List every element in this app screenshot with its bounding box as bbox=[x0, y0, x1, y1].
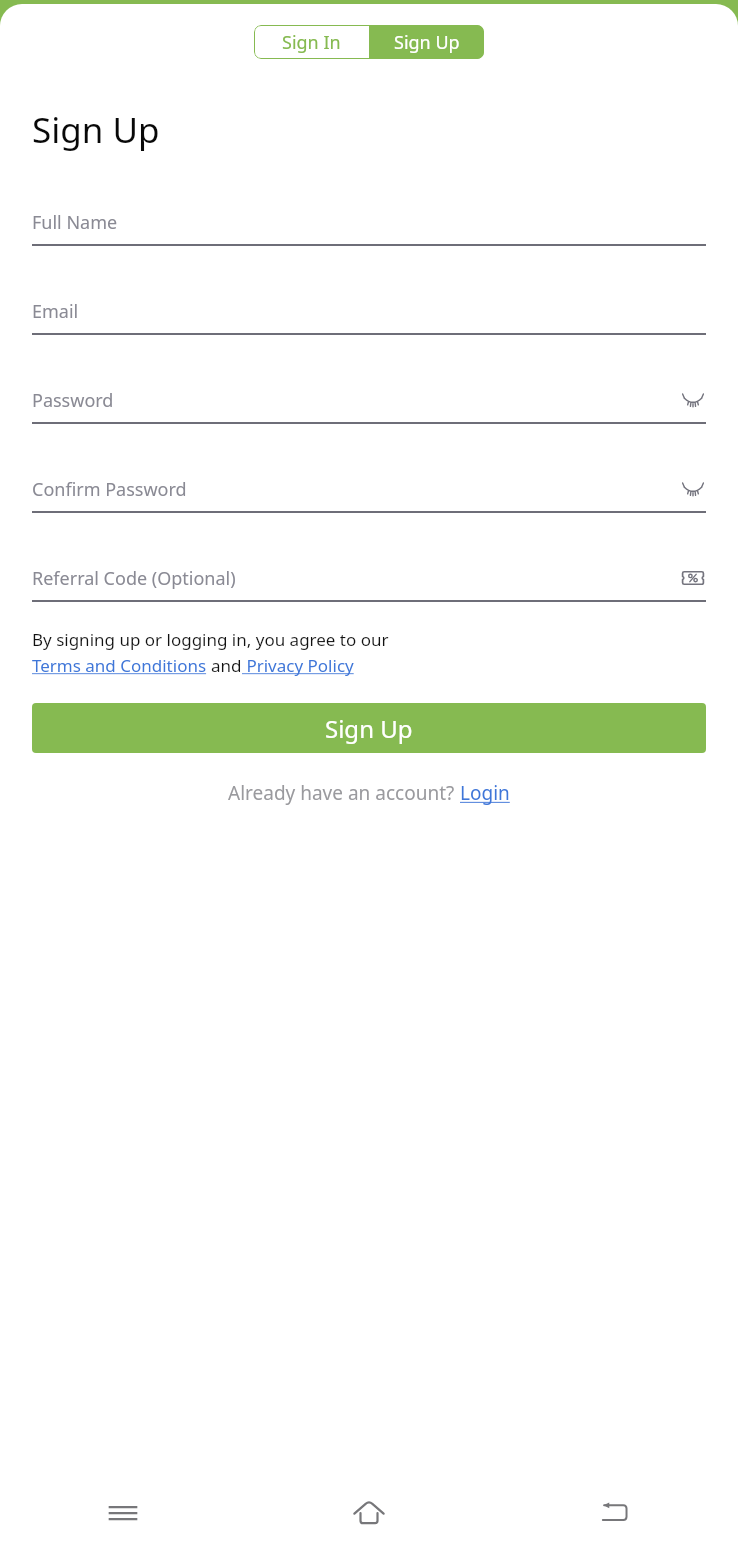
staticText: Sign Up bbox=[32, 106, 160, 154]
button[interactable]: Privacy Policy bbox=[242, 654, 354, 677]
button[interactable]: Email bbox=[32, 298, 706, 335]
staticText: Email bbox=[32, 299, 680, 324]
button[interactable]: Full Name bbox=[32, 209, 706, 246]
staticText: Sign Up bbox=[394, 30, 460, 55]
staticText: Confirm Password bbox=[32, 477, 680, 502]
button[interactable]: Show password bbox=[680, 476, 706, 502]
staticText: Already have an account? bbox=[228, 780, 460, 806]
button[interactable]: Sign Up bbox=[32, 703, 706, 753]
staticText: Password bbox=[32, 388, 680, 413]
staticText: By signing up or logging in, you agree t… bbox=[32, 628, 389, 651]
button[interactable]: Back bbox=[492, 1480, 738, 1546]
button[interactable]: Menu bbox=[0, 1480, 246, 1546]
staticText: Full Name bbox=[32, 210, 680, 235]
button[interactable]: Referral coupon bbox=[680, 565, 706, 591]
staticText: Referral Code (Optional) bbox=[32, 566, 680, 591]
button[interactable]: Sign Up bbox=[369, 25, 484, 59]
button[interactable]: Home bbox=[246, 1480, 492, 1546]
button[interactable]: Referral Code (Optional) bbox=[32, 565, 706, 602]
button[interactable]: Sign In bbox=[254, 25, 369, 59]
button[interactable]: Confirm Password bbox=[32, 476, 706, 513]
staticText: and bbox=[211, 654, 242, 677]
button[interactable]: Terms and Conditions bbox=[32, 654, 211, 677]
button[interactable]: Password bbox=[32, 387, 706, 424]
button[interactable]: Show password bbox=[680, 387, 706, 413]
button[interactable]: Login bbox=[460, 780, 510, 806]
staticText: Sign In bbox=[282, 30, 341, 55]
staticText: Sign Up bbox=[325, 712, 413, 745]
